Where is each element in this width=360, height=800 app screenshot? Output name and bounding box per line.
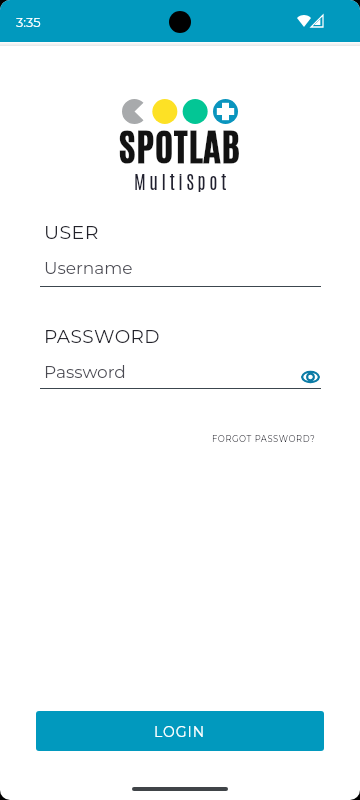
button[interactable]: FORGOT PASSWORD? xyxy=(208,431,320,447)
staticText: PASSWORD xyxy=(44,325,161,348)
button[interactable]: LOGIN xyxy=(36,711,324,751)
staticText: FORGOT PASSWORD? xyxy=(212,434,316,444)
staticText: SPOTLAB xyxy=(119,119,241,168)
staticText: Username xyxy=(44,258,133,279)
button[interactable]: Show password xyxy=(300,365,321,388)
staticText: USER xyxy=(44,221,99,244)
staticText: MultiSpot xyxy=(134,169,230,193)
staticText: 3:35 xyxy=(16,14,41,30)
staticText: Password xyxy=(44,362,126,383)
staticText: LOGIN xyxy=(154,723,206,740)
